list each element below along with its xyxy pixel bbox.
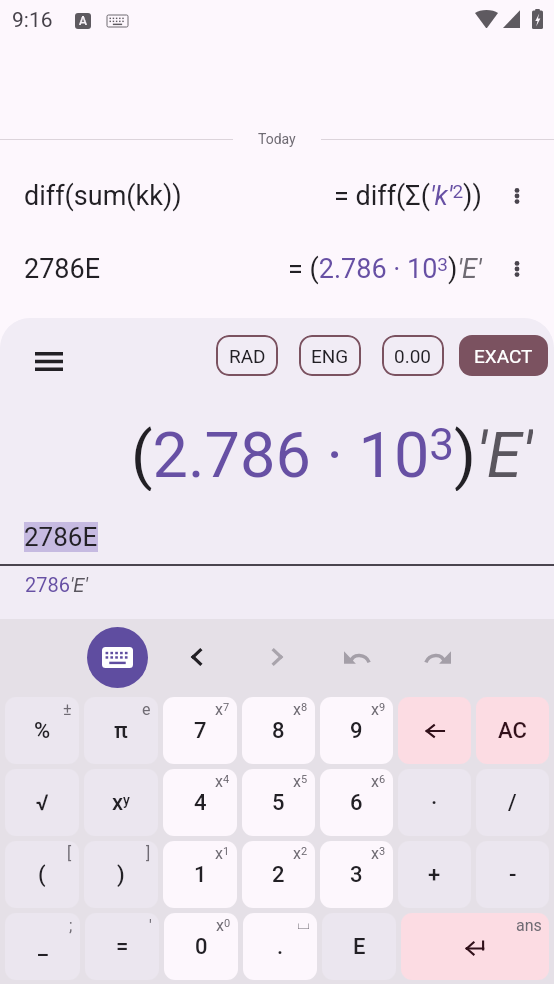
staticText: E [353,934,366,960]
button[interactable]: More options [505,257,529,281]
button[interactable]: Menu [26,338,72,384]
button[interactable]: / [476,769,549,836]
button[interactable]: ENG [299,335,361,376]
staticText: ENG [311,345,349,367]
button[interactable]: 6 [320,769,393,836]
button[interactable]: √ [5,769,79,836]
button[interactable]: = [85,913,159,980]
staticText: 2 [272,862,285,888]
staticText: % [34,718,51,744]
staticText: 7 [194,718,207,744]
button[interactable]: Show keyboard [87,627,148,688]
button[interactable]: AC [476,697,549,764]
button[interactable]: 5 [242,769,315,836]
staticText: + [428,862,441,888]
button[interactable]: diff(sum(kk)) [0,172,554,220]
staticText: AC [498,718,527,744]
staticText: ⌴ [297,916,310,932]
staticText: 4 [194,790,207,816]
staticText: x1 [215,844,230,863]
button[interactable]: 7 [163,697,237,764]
staticText: 0.00 [394,345,432,367]
button[interactable]: xy [84,769,158,836]
staticText: 2786E [24,522,98,552]
staticText: 6 [350,790,363,816]
staticText: 9 [350,718,363,744]
staticText: Today [258,131,296,147]
staticText: ± [63,700,72,719]
staticText: = [116,934,129,960]
button[interactable]: Move cursor right [253,633,301,681]
button[interactable]: 8 [242,697,315,764]
staticText: EXACT [474,345,533,367]
button[interactable]: Redo [413,633,461,681]
staticText: / [508,790,517,816]
button[interactable]: % [5,697,79,764]
staticText: e [142,700,151,719]
staticText: xy [112,790,130,816]
staticText: (2.786 · 103)'E' [131,419,533,491]
button[interactable]: 2 [242,841,315,908]
staticText: x4 [215,772,230,791]
staticText: = (2.786 · 103)'E' [288,253,482,285]
button[interactable]: · [398,769,471,836]
button[interactable] [398,697,471,764]
staticText: x5 [293,772,308,791]
staticText: 0 [195,934,208,960]
button[interactable]: 4 [163,769,237,836]
staticText: x0 [216,916,231,935]
button[interactable]: ans [401,913,549,980]
button[interactable]: 0 [164,913,238,980]
button[interactable]: . [243,913,317,980]
staticText: _ [38,934,48,960]
staticText: x7 [215,700,230,719]
button[interactable]: π [84,697,158,764]
staticText: [ [67,844,72,863]
button[interactable]: 0.00 [382,335,444,376]
staticText: = diff(Σ('k'2)) [334,180,482,212]
staticText: 1 [194,862,207,888]
button[interactable]: 9 [320,697,393,764]
staticText: ans [516,916,542,935]
staticText: ] [146,844,151,863]
staticText: x3 [371,844,386,863]
staticText: . [277,934,284,960]
staticText: RAD [229,345,266,367]
staticText: 3 [350,862,363,888]
staticText: x9 [371,700,386,719]
staticText: ) [117,862,125,888]
button[interactable]: E [322,913,396,980]
staticText: ' [149,916,152,935]
staticText: x2 [293,844,308,863]
staticText: 2786'E' [25,573,88,596]
staticText: 2786E [24,253,101,285]
button[interactable]: - [476,841,549,908]
staticText: A [79,14,87,28]
button[interactable]: _ [5,913,80,980]
staticText: 8 [272,718,285,744]
staticText: ; [69,916,73,935]
staticText: x6 [371,772,386,791]
button[interactable]: + [398,841,471,908]
button[interactable]: Undo [333,633,381,681]
staticText: - [509,862,517,888]
staticText: 9:16 [12,8,53,33]
staticText: x8 [293,700,308,719]
staticText: ( [38,862,46,888]
button[interactable]: Move cursor left [173,633,221,681]
button[interactable]: EXACT [459,335,548,376]
staticText: √ [36,790,49,816]
button[interactable]: ( [5,841,79,908]
button[interactable]: 3 [320,841,393,908]
button[interactable]: 2786E [0,245,554,293]
button[interactable]: 1 [163,841,237,908]
staticText: · [431,790,438,816]
staticText: 5 [272,790,285,816]
staticText: diff(sum(kk)) [24,180,182,212]
button[interactable]: ) [84,841,158,908]
button[interactable]: RAD [216,335,278,376]
button[interactable]: More options [505,184,529,208]
staticText: π [114,718,128,744]
